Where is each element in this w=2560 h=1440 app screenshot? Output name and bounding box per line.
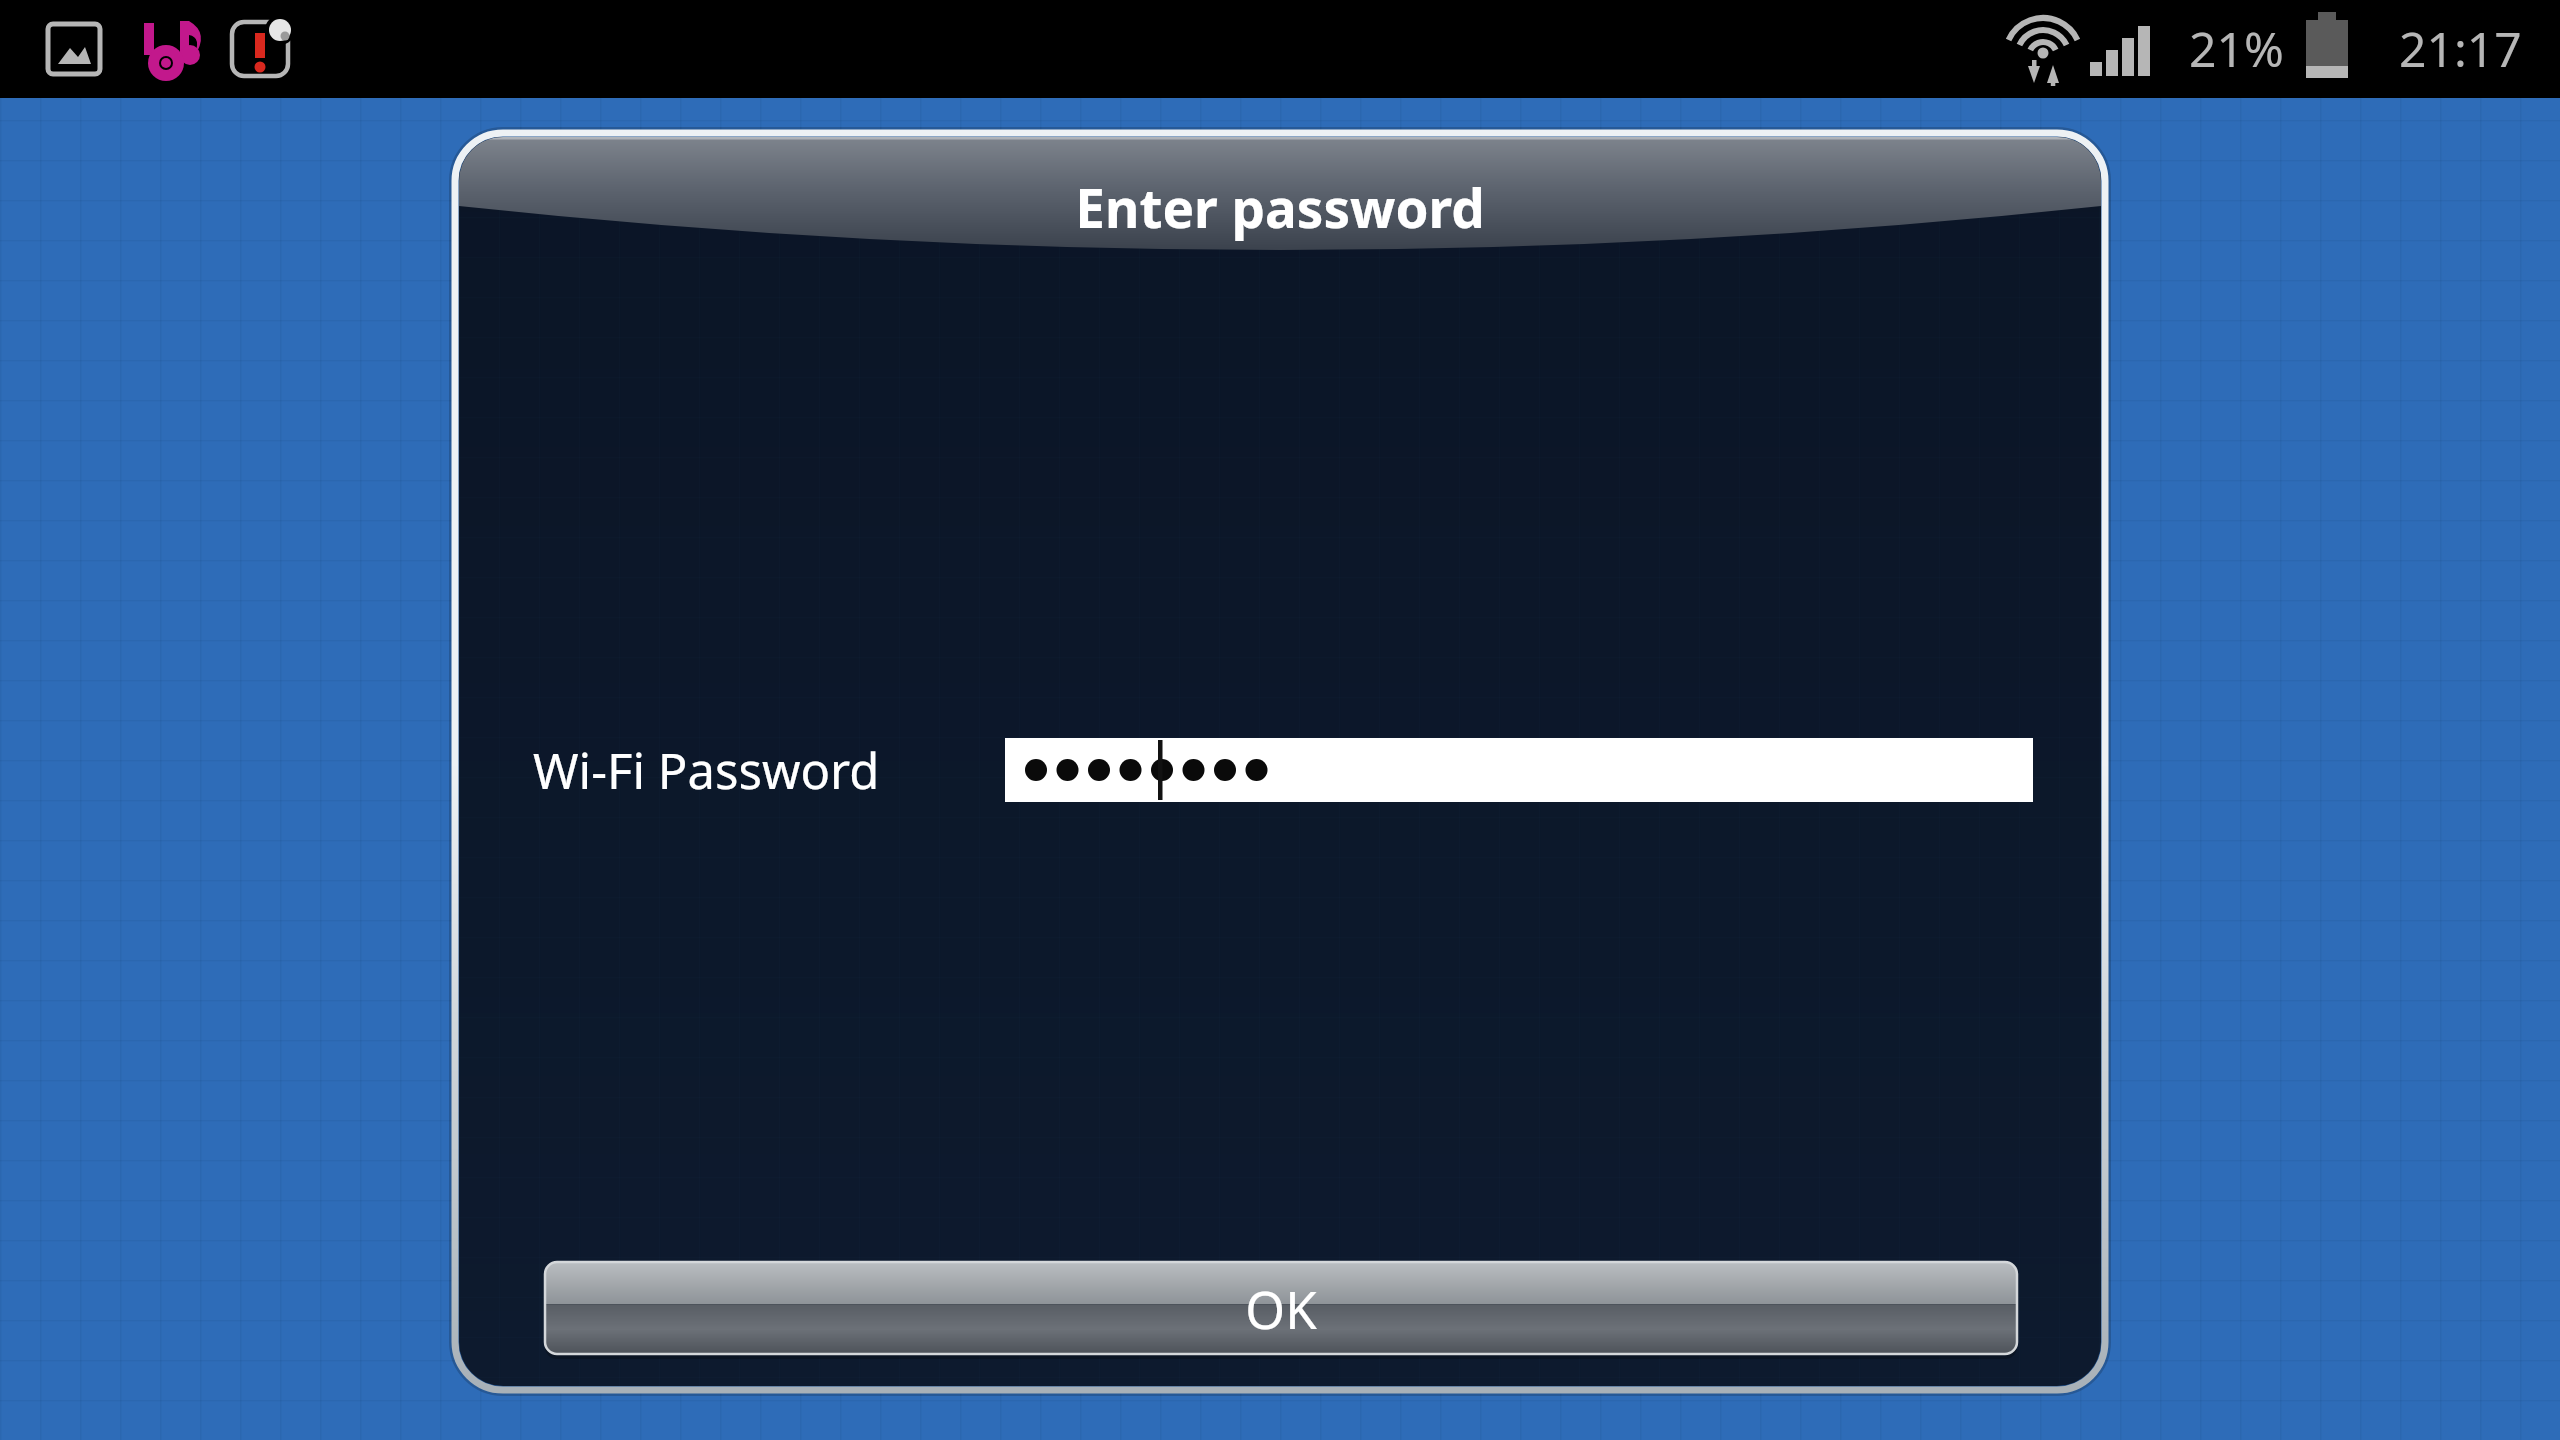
staticText: 21% [2189,16,2284,80]
staticText: 21:17 [2399,16,2522,80]
staticText: Enter password [1075,171,1485,243]
button[interactable]: OK [545,1262,2017,1354]
button[interactable]: Wi-Fi password input field [1005,738,2033,802]
staticText: Wi-Fi Password [533,737,880,803]
staticText: OK [1245,1274,1317,1343]
